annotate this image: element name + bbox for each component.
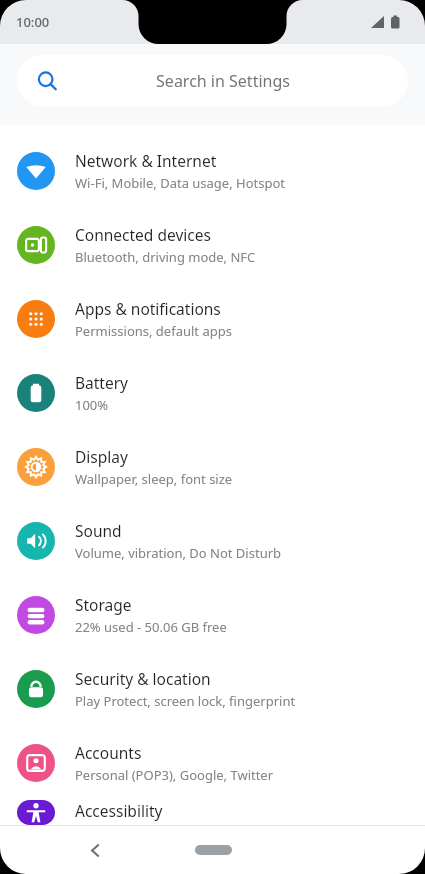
staticText: 10:00 <box>16 13 50 31</box>
staticText: Battery <box>75 372 129 393</box>
button[interactable]: Storage <box>0 578 425 652</box>
staticText: Play Protect, screen lock, fingerprint <box>75 692 296 710</box>
button[interactable]: Connected devices <box>0 208 425 282</box>
staticText: Wi-Fi, Mobile, Data usage, Hotspot <box>75 174 286 192</box>
button[interactable]: Accessibility <box>0 800 425 825</box>
staticText: Sound <box>75 520 122 541</box>
staticText: Display <box>75 446 128 467</box>
button[interactable]: Accounts <box>0 726 425 800</box>
staticText: Connected devices <box>75 224 211 245</box>
button[interactable]: Home <box>185 837 241 863</box>
staticText: Network & Internet <box>75 150 217 171</box>
button[interactable]: Display <box>0 430 425 504</box>
staticText: Accounts <box>75 742 142 763</box>
button[interactable]: Sound <box>0 504 425 578</box>
staticText: Search in Settings <box>48 70 398 92</box>
staticText: Accessibility <box>75 800 163 821</box>
staticText: Personal (POP3), Google, Twitter <box>75 766 274 784</box>
button[interactable]: Apps & notifications <box>0 282 425 356</box>
staticText: Wallpaper, sleep, font size <box>75 470 233 488</box>
staticText: Security & location <box>75 668 211 689</box>
staticText: Apps & notifications <box>75 298 221 319</box>
button[interactable]: Back <box>78 833 112 867</box>
staticText: Storage <box>75 594 132 615</box>
staticText: Volume, vibration, Do Not Disturb <box>75 544 282 562</box>
staticText: 22% used - 50.06 GB free <box>75 618 227 636</box>
button[interactable]: Security & location <box>0 652 425 726</box>
button[interactable]: Battery <box>0 356 425 430</box>
button[interactable]: Network & Internet <box>0 134 425 208</box>
other: Search <box>36 70 58 92</box>
staticText: 100% <box>75 396 109 414</box>
staticText: Bluetooth, driving mode, NFC <box>75 248 256 266</box>
staticText: Permissions, default apps <box>75 322 232 340</box>
button[interactable]: Search <box>17 55 408 106</box>
